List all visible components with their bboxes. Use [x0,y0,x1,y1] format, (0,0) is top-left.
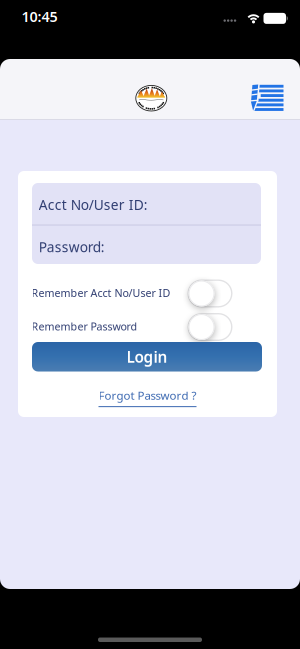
staticText: Remember Acct No/User ID [31,285,170,300]
button[interactable]: Login [32,342,262,371]
staticText: Acct No/User ID: [39,195,148,214]
staticText: 10:45 [22,6,58,26]
button[interactable]: Password: [32,225,261,264]
staticText: Login [126,346,167,367]
button[interactable]: Acct No/User ID: [32,183,261,224]
button[interactable]: Forgot Password ? [32,387,263,407]
staticText: Remember Password [31,319,137,333]
button[interactable]: Language [248,84,284,112]
button[interactable]: Remember Acct No/User ID [187,279,232,307]
staticText: Forgot Password ? [98,387,196,403]
staticText: Password: [39,237,105,256]
button[interactable]: Remember Password [187,313,232,341]
